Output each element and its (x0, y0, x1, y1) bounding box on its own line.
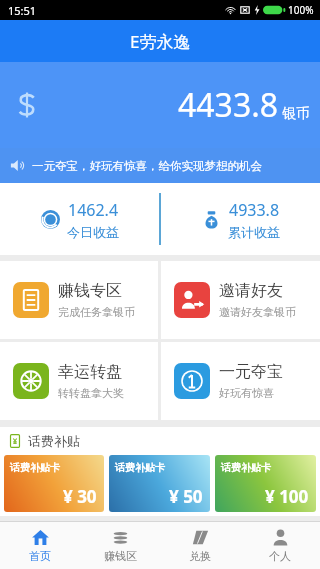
staticText: 兑换 (189, 549, 211, 563)
staticText: 邀请好友 (219, 281, 283, 301)
staticText: 4433.8 (178, 83, 279, 127)
staticText: 首页 (29, 549, 51, 563)
button[interactable]: 一元夺宝，好玩有惊喜，给你实现梦想的机会 (0, 148, 320, 183)
button[interactable]: 兑换 (160, 522, 240, 569)
button[interactable]: 邀请好友 (161, 261, 320, 339)
staticText: 一元夺宝 (219, 362, 283, 382)
button[interactable]: 话费补贴卡 (109, 455, 210, 512)
button[interactable]: 赚钱区 (80, 522, 160, 569)
staticText: ¥ 50 (169, 485, 203, 508)
staticText: 1462.4 (68, 199, 119, 221)
staticText: 话费补贴卡 (221, 461, 271, 474)
staticText: 15:51 (8, 3, 37, 18)
button[interactable]: 话费补贴卡 (215, 455, 316, 512)
button[interactable]: 4933.8 (161, 183, 320, 255)
staticText: 今日收益 (67, 224, 119, 240)
staticText: 好玩有惊喜 (219, 386, 274, 400)
staticText: 邀请好友拿银币 (219, 305, 296, 319)
staticText: 100% (288, 3, 314, 17)
staticText: 话费补贴 (28, 433, 80, 449)
button[interactable]: 幸运转盘 (0, 342, 158, 420)
button[interactable]: 赚钱专区 (0, 261, 158, 339)
button[interactable]: 一元夺宝 (161, 342, 320, 420)
staticText: 话费补贴卡 (10, 461, 60, 474)
staticText: 赚钱专区 (58, 281, 122, 301)
staticText: 累计收益 (228, 224, 280, 240)
staticText: 转转盘拿大奖 (58, 386, 124, 400)
staticText: ¥ 100 (265, 485, 309, 508)
staticText: 一元夺宝，好玩有惊喜，给你实现梦想的机会 (32, 159, 262, 173)
staticText: 4933.8 (229, 199, 280, 221)
staticText: 个人 (269, 549, 291, 563)
staticText: 赚钱区 (104, 549, 137, 563)
button[interactable]: 话费补贴卡 (4, 455, 104, 512)
staticText: 完成任务拿银币 (58, 305, 135, 319)
staticText: 话费补贴卡 (115, 461, 165, 474)
staticText: ¥ 30 (63, 485, 97, 508)
button[interactable]: 1462.4 (0, 183, 159, 255)
staticText: 幸运转盘 (58, 362, 122, 382)
button[interactable]: 首页 (0, 522, 80, 569)
button[interactable]: 个人 (240, 522, 320, 569)
staticText: 银币 (282, 105, 310, 123)
staticText: E劳永逸 (130, 30, 191, 53)
